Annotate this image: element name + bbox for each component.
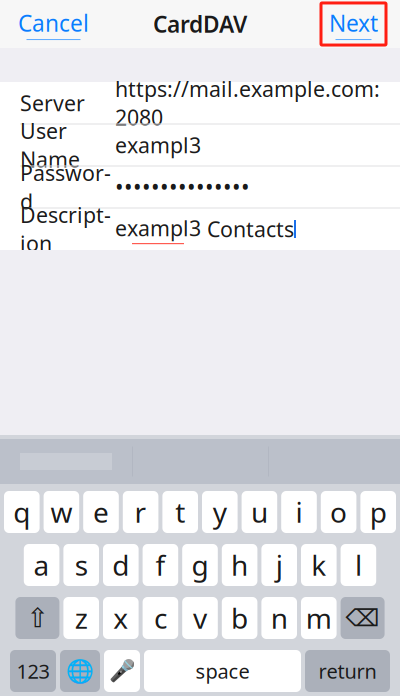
button[interactable]: t — [162, 491, 198, 533]
button[interactable]: Description — [0, 208, 400, 249]
button[interactable]: k — [301, 544, 337, 586]
staticText: y — [213, 493, 227, 531]
button[interactable]: e — [83, 491, 119, 533]
staticText: 123 — [16, 658, 49, 684]
button[interactable]: b — [222, 597, 257, 639]
button[interactable]: o — [321, 491, 356, 533]
staticText: return — [318, 658, 376, 684]
button[interactable]: Next — [321, 3, 400, 45]
staticText: Description — [20, 201, 111, 257]
staticText: k — [311, 546, 326, 584]
staticText: https://mail.example.com:2080 — [115, 75, 380, 131]
button[interactable]: r — [123, 491, 158, 533]
button[interactable]: Next keyboard — [60, 650, 100, 692]
staticText: u — [251, 493, 268, 531]
button[interactable]: j — [261, 544, 297, 586]
button[interactable]: c — [143, 597, 178, 639]
staticText: m — [306, 599, 332, 637]
staticText: ⌫ — [346, 604, 380, 632]
button[interactable]: g — [182, 544, 218, 586]
staticText: b — [231, 599, 248, 637]
staticText: q — [13, 493, 30, 531]
staticText: Password — [20, 159, 111, 215]
staticText: ••••••••••••••• — [115, 172, 250, 202]
staticText: Server — [20, 89, 85, 117]
staticText: z — [75, 599, 88, 637]
button[interactable]: Delete — [341, 597, 385, 639]
staticText: CardDAV — [153, 9, 247, 39]
button[interactable]: Shift — [15, 597, 59, 639]
button[interactable]: s — [63, 544, 99, 586]
button[interactable]: User Name — [0, 124, 400, 165]
staticText: j — [276, 546, 283, 584]
staticText: 🌐 — [66, 658, 94, 684]
staticText: l — [355, 546, 362, 584]
button[interactable]: Return — [305, 650, 390, 692]
staticText: i — [295, 493, 302, 531]
button[interactable]: z — [63, 597, 99, 639]
staticText: n — [271, 599, 288, 637]
button[interactable]: Numbers — [10, 650, 56, 692]
staticText: Contacts — [201, 215, 294, 243]
button[interactable]: Server — [0, 82, 400, 123]
staticText: g — [191, 546, 208, 584]
staticText: p — [370, 493, 387, 531]
staticText: Cancel — [18, 8, 89, 38]
button[interactable]: u — [242, 491, 277, 533]
staticText: Next — [329, 8, 378, 38]
button[interactable]: n — [261, 597, 297, 639]
button[interactable]: y — [202, 491, 238, 533]
staticText: exampl3 — [115, 214, 201, 242]
staticText: d — [112, 546, 129, 584]
staticText: h — [231, 546, 248, 584]
staticText: ⇧ — [26, 603, 48, 633]
staticText: s — [75, 546, 88, 584]
button[interactable]: Space — [144, 650, 301, 692]
staticText: x — [113, 599, 128, 637]
staticText: exampl3 — [115, 131, 201, 159]
staticText: t — [175, 493, 185, 531]
button[interactable]: l — [341, 544, 376, 586]
staticText: f — [155, 546, 165, 584]
button[interactable]: f — [143, 544, 178, 586]
button[interactable]: d — [103, 544, 139, 586]
button[interactable]: m — [301, 597, 337, 639]
button[interactable]: p — [360, 491, 396, 533]
button[interactable]: q — [4, 491, 40, 533]
staticText: r — [135, 493, 147, 531]
staticText: 🎤 — [108, 659, 135, 683]
button[interactable]: x — [103, 597, 139, 639]
staticText: e — [93, 493, 109, 531]
staticText: space — [195, 658, 249, 684]
button[interactable]: Cancel — [0, 0, 89, 48]
staticText: w — [50, 493, 72, 531]
button[interactable]: i — [281, 491, 317, 533]
button[interactable]: v — [182, 597, 218, 639]
staticText: User Name — [20, 117, 80, 173]
button[interactable]: h — [222, 544, 257, 586]
staticText: v — [193, 599, 207, 637]
button[interactable]: Dictate — [104, 650, 140, 692]
staticText: c — [154, 599, 167, 637]
button[interactable]: w — [44, 491, 79, 533]
staticText: a — [34, 546, 50, 584]
button[interactable]: Password — [0, 166, 400, 207]
button[interactable]: a — [24, 544, 59, 586]
staticText: o — [330, 493, 347, 531]
